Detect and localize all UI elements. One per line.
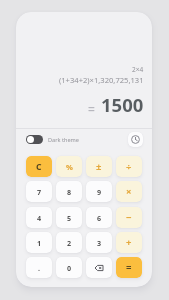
staticText: 5 <box>67 213 72 223</box>
staticText: Dark theme <box>48 136 79 144</box>
staticText: 3 <box>97 238 102 248</box>
button[interactable]: ± <box>86 156 112 177</box>
staticText: ÷ <box>126 160 132 173</box>
staticText: 9 <box>97 187 102 197</box>
button[interactable]: Backspace <box>86 257 112 278</box>
button[interactable]: 2 <box>56 232 82 253</box>
button[interactable]: 8 <box>56 181 82 202</box>
staticText: 7 <box>37 187 42 197</box>
button[interactable]: . <box>26 257 52 278</box>
staticText: 4 <box>37 213 42 223</box>
staticText: C <box>36 161 42 173</box>
staticText: 1500 <box>101 92 144 117</box>
button[interactable]: 1 <box>26 232 52 253</box>
staticText: 2×4 <box>132 65 144 74</box>
staticText: 1 <box>37 238 42 248</box>
button[interactable]: 0 <box>56 257 82 278</box>
staticText: 0 <box>67 263 72 273</box>
button[interactable]: 9 <box>86 181 112 202</box>
button[interactable]: C <box>26 156 52 177</box>
staticText: 8 <box>67 187 72 197</box>
staticText: − <box>126 211 132 224</box>
staticText: 2 <box>67 238 72 248</box>
button[interactable]: 5 <box>56 207 82 228</box>
staticText: + <box>126 236 132 249</box>
staticText: ± <box>96 160 102 173</box>
staticText: = <box>88 101 95 117</box>
staticText: (1+34+2)×1,320,725,131 <box>59 75 144 85</box>
button[interactable]: % <box>56 156 82 177</box>
button[interactable]: 4 <box>26 207 52 228</box>
staticText: = <box>126 261 132 274</box>
button[interactable]: 7 <box>26 181 52 202</box>
button[interactable]: = <box>116 257 142 278</box>
button[interactable]: Dark theme <box>26 135 79 144</box>
button[interactable]: + <box>116 232 142 253</box>
button[interactable]: 3 <box>86 232 112 253</box>
staticText: 6 <box>97 213 102 223</box>
staticText: % <box>66 162 73 172</box>
staticText: . <box>38 263 41 273</box>
button[interactable]: − <box>116 207 142 228</box>
staticText: × <box>126 185 132 198</box>
button[interactable]: History <box>128 132 143 147</box>
button[interactable]: ÷ <box>116 156 142 177</box>
button[interactable]: × <box>116 181 142 202</box>
button[interactable]: 6 <box>86 207 112 228</box>
